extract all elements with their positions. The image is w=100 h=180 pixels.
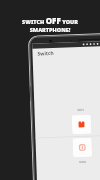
button[interactable]: Toggle mobile data [72, 138, 92, 157]
staticText: Switch [37, 50, 55, 57]
button[interactable]: Toggle Wi-Fi [72, 115, 91, 134]
staticText: SWITCH OFF YOUR SMARTPHONE! [3, 15, 97, 34]
staticText: DATA [79, 160, 86, 164]
staticText: WIFI [77, 108, 84, 112]
